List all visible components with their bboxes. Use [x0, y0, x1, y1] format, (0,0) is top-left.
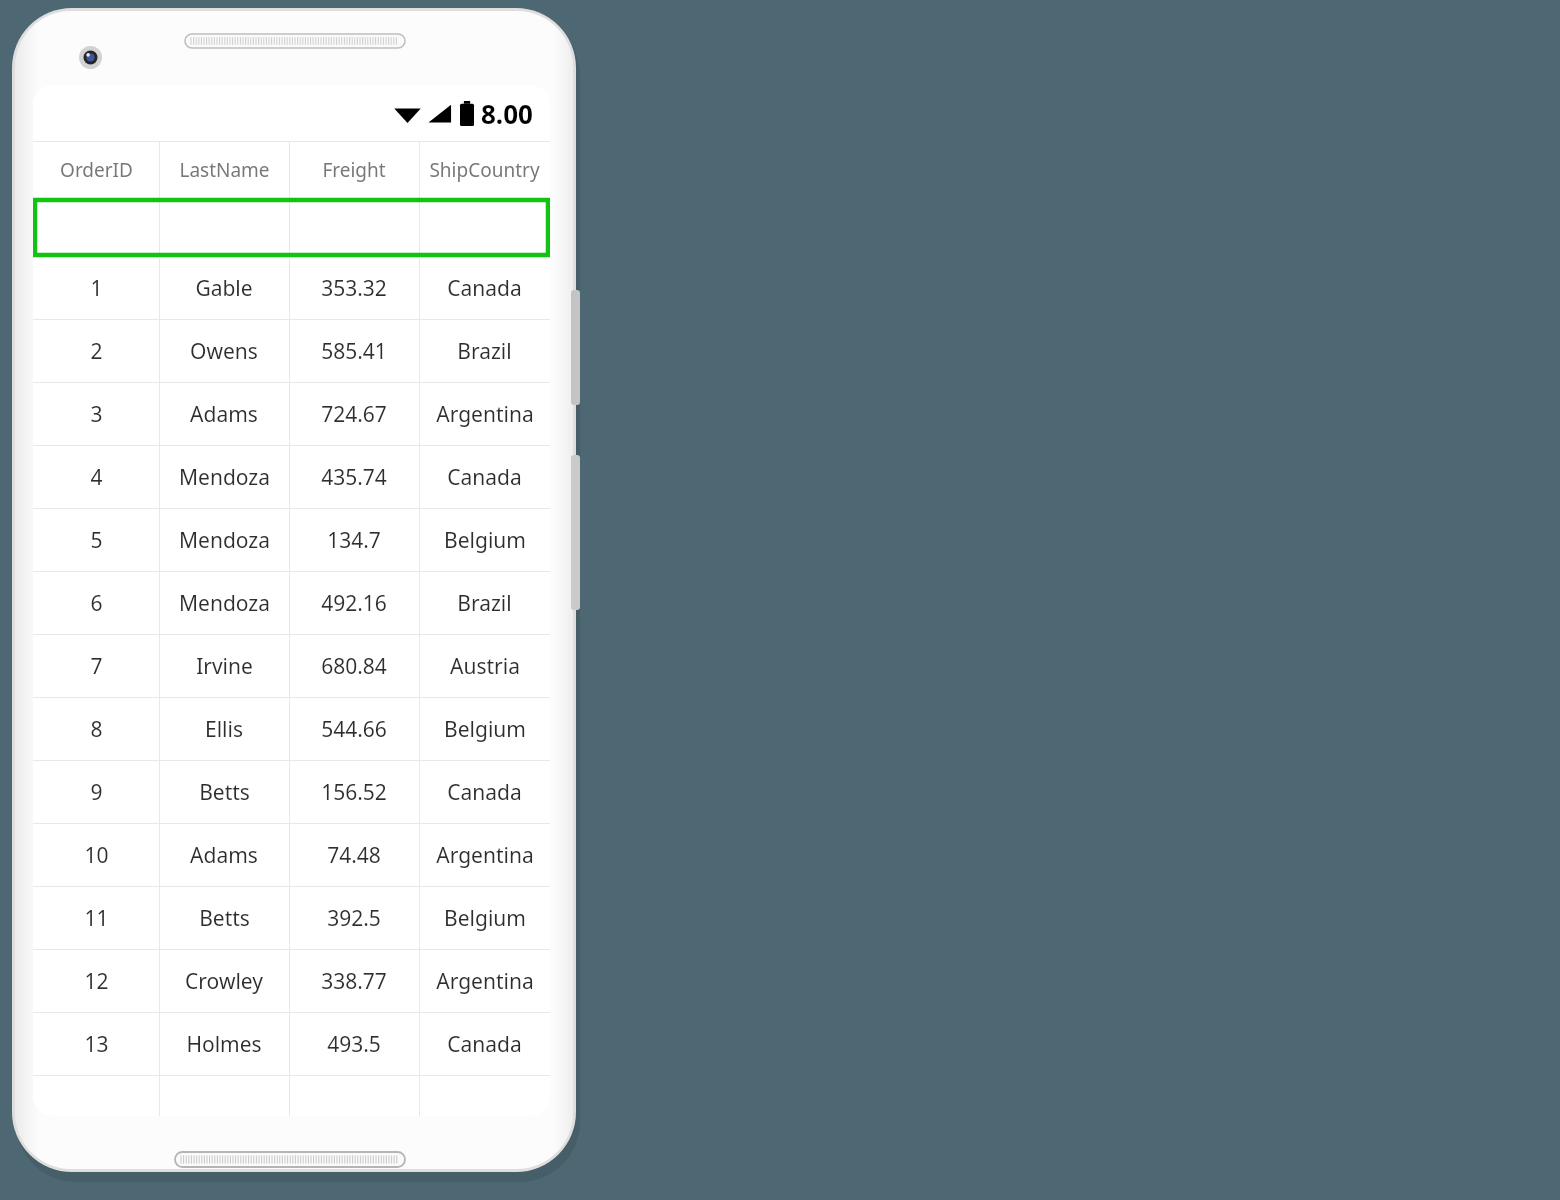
staticText: Crowley [185, 967, 263, 996]
button[interactable]: 1 [33, 257, 550, 319]
button[interactable]: 6 [33, 572, 550, 634]
button[interactable]: ShipCountry [419, 142, 550, 198]
staticText: 544.66 [321, 715, 387, 744]
staticText: 8.00 [481, 96, 533, 131]
staticText: Betts [199, 904, 250, 933]
button[interactable]: 11 [33, 887, 550, 949]
staticText: Belgium [444, 715, 526, 744]
button[interactable]: Freight [289, 142, 419, 198]
staticText: Mendoza [179, 463, 270, 492]
staticText: Gable [195, 274, 253, 303]
staticText: 1 [90, 274, 103, 303]
staticText: 7 [90, 652, 103, 681]
staticText: Mendoza [179, 526, 270, 555]
staticText: Belgium [444, 526, 526, 555]
staticText: 4 [90, 463, 103, 492]
staticText: 8 [90, 715, 103, 744]
staticText: Brazil [457, 337, 512, 366]
staticText: Adams [190, 400, 258, 429]
staticText: 10 [84, 841, 109, 870]
staticText: Argentina [436, 967, 534, 996]
staticText: OrderID [60, 157, 133, 183]
button[interactable]: Add new record [33, 198, 550, 257]
button[interactable]: 9 [33, 761, 550, 823]
staticText: 2 [90, 337, 103, 366]
staticText: 680.84 [321, 652, 387, 681]
button[interactable]: 10 [33, 824, 550, 886]
staticText: 3 [90, 400, 103, 429]
staticText: Holmes [186, 1030, 262, 1059]
staticText: 9 [90, 778, 103, 807]
button[interactable]: 2 [33, 320, 550, 382]
staticText: 5 [90, 526, 103, 555]
button[interactable]: 7 [33, 635, 550, 697]
staticText: 353.32 [321, 274, 387, 303]
staticText: 13 [84, 1030, 109, 1059]
button[interactable]: 13 [33, 1013, 550, 1075]
staticText: Irvine [196, 652, 253, 681]
button[interactable]: 4 [33, 446, 550, 508]
button[interactable]: 5 [33, 509, 550, 571]
staticText: Betts [199, 778, 250, 807]
staticText: 338.77 [321, 967, 387, 996]
staticText: 724.67 [321, 400, 387, 429]
other: Wi-Fi signal [394, 103, 421, 124]
staticText: Brazil [457, 589, 512, 618]
staticText: Canada [447, 463, 522, 492]
staticText: 392.5 [327, 904, 381, 933]
staticText: Canada [447, 778, 522, 807]
staticText: 435.74 [321, 463, 387, 492]
staticText: 134.7 [327, 526, 381, 555]
staticText: 493.5 [327, 1030, 381, 1059]
staticText: Owens [190, 337, 258, 366]
staticText: Canada [447, 1030, 522, 1059]
staticText: 585.41 [321, 337, 387, 366]
staticText: 6 [90, 589, 103, 618]
staticText: Ellis [205, 715, 243, 744]
staticText: Argentina [436, 841, 534, 870]
staticText: 492.16 [321, 589, 387, 618]
button[interactable]: 8 [33, 698, 550, 760]
staticText: 156.52 [321, 778, 387, 807]
button[interactable]: OrderID [33, 142, 159, 198]
button[interactable]: 12 [33, 950, 550, 1012]
staticText: LastName [179, 157, 270, 183]
staticText: 12 [84, 967, 109, 996]
staticText: Argentina [436, 400, 534, 429]
other: Battery [460, 101, 474, 126]
staticText: Adams [190, 841, 258, 870]
staticText: Canada [447, 274, 522, 303]
other: Cellular signal [428, 103, 452, 124]
button[interactable]: LastName [159, 142, 289, 198]
staticText: ShipCountry [429, 157, 540, 183]
staticText: 11 [84, 904, 109, 933]
staticText: Mendoza [179, 589, 270, 618]
staticText: Freight [322, 157, 386, 183]
staticText: Austria [450, 652, 520, 681]
staticText: 74.48 [327, 841, 381, 870]
staticText: Belgium [444, 904, 526, 933]
button[interactable]: 3 [33, 383, 550, 445]
